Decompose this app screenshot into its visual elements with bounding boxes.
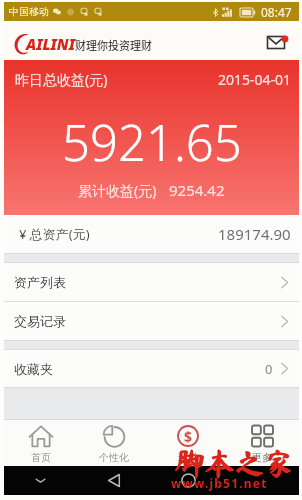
staticText: 189174.90 [218,224,291,244]
button[interactable]: 收藏夹 [4,350,299,387]
staticText: 昨日总收益(元) [15,70,108,89]
staticText: 08:47 [261,4,292,20]
staticText: 个性化 [99,451,129,464]
staticText: $ [184,427,193,446]
staticText: 2015-04-01 [218,70,292,89]
staticText: 更多 [252,451,272,464]
staticText: 首页 [31,451,51,464]
staticText: 资产列表 [14,274,66,290]
button[interactable]: Hide [4,466,77,495]
button[interactable]: 交易记录 [4,302,299,340]
button[interactable]: Messages [262,26,292,56]
button[interactable]: 首页 [4,420,77,466]
button[interactable]: 更多 [225,420,299,466]
staticText: 财理你投资理财 [75,37,152,53]
staticText: 0 [265,360,273,378]
button[interactable]: 昨日总收益(元) [4,60,299,215]
staticText: 中国移动 [9,5,49,18]
button[interactable]: Back [77,466,151,495]
staticText: 脚本之家 [174,449,294,479]
button[interactable]: ¥ 总资产(元) [4,215,299,253]
staticText: www.jb51.net [171,475,268,491]
staticText: AILINI [26,34,76,54]
button[interactable]: $ [151,420,225,466]
button[interactable]: 个性化 [77,420,151,466]
button[interactable]: Home [151,466,225,495]
button[interactable]: 资产列表 [4,263,299,301]
staticText: ¥ 总资产(元) [19,225,90,243]
staticText: 理财 [178,451,198,464]
staticText: 9254.42 [169,180,225,200]
staticText: 5921.65 [62,109,242,176]
staticText: 累计收益(元) [78,181,157,200]
staticText: 交易记录 [14,313,66,329]
staticText: 收藏夹 [14,361,53,377]
